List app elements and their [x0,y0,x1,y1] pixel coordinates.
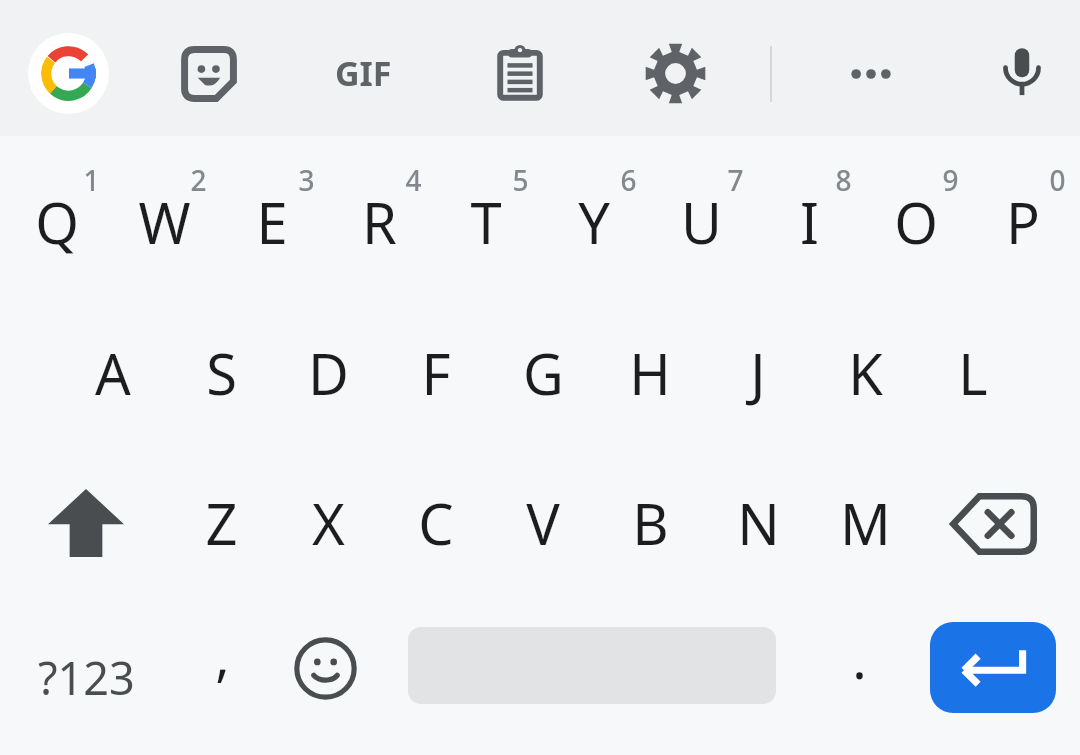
button[interactable] [170,600,280,755]
staticText: F [421,335,451,411]
staticText: Z [205,485,238,561]
button[interactable] [973,150,1080,300]
staticText: , [215,618,230,692]
button[interactable]: Shift [6,450,167,600]
button[interactable]: ?123 [6,600,166,755]
button[interactable] [865,150,972,300]
button[interactable] [60,300,167,450]
button[interactable] [275,450,382,600]
button[interactable] [650,150,757,300]
button[interactable]: Clipboard [487,40,553,106]
button[interactable]: Google search [28,33,109,114]
staticText: I [800,184,819,260]
button[interactable] [800,600,912,755]
button[interactable]: Settings [643,41,708,106]
button[interactable] [489,300,596,450]
staticText: T [470,184,502,260]
button[interactable] [328,150,435,300]
button[interactable] [436,150,543,300]
staticText: 5 [512,161,529,199]
staticText: 1 [83,161,100,199]
staticText: C [418,485,454,561]
staticText: X [312,485,345,561]
staticText: G [523,335,564,411]
button[interactable] [543,150,650,300]
button[interactable] [382,300,489,450]
button[interactable] [489,450,596,600]
button[interactable]: GIF [322,40,404,106]
staticText: 3 [298,161,315,199]
staticText: U [681,184,722,260]
button[interactable] [275,300,382,450]
staticText: 9 [942,161,959,199]
button[interactable]: Enter [930,622,1056,713]
button[interactable] [221,150,328,300]
staticText: 2 [190,161,207,199]
button[interactable] [758,150,865,300]
button[interactable] [597,450,704,600]
button[interactable]: Voice input [989,39,1055,105]
staticText: A [95,335,131,411]
staticText: 6 [620,161,637,199]
staticText: S [206,335,237,411]
staticText: P [1006,184,1040,260]
staticText: D [308,335,349,411]
staticText: M [840,485,891,561]
button[interactable] [167,300,274,450]
button[interactable] [704,300,811,450]
staticText: E [256,184,288,260]
button[interactable] [704,450,811,600]
button[interactable] [382,450,489,600]
button[interactable] [597,300,704,450]
staticText: N [737,485,780,561]
staticText: R [362,184,397,260]
staticText: B [632,485,669,561]
button[interactable] [113,150,220,300]
staticText: V [526,485,560,561]
button[interactable] [6,150,113,300]
staticText: GIF [335,50,392,96]
staticText: . [852,621,867,695]
staticText: Y [578,184,610,260]
staticText: 0 [1049,161,1066,199]
button[interactable]: Emoji [284,600,396,755]
staticText: W [138,184,191,260]
staticText: L [958,335,988,411]
button[interactable] [919,300,1026,450]
staticText: K [848,335,883,411]
staticText: H [629,335,671,411]
staticText: ?123 [38,647,135,708]
staticText: 4 [405,161,422,199]
staticText: O [894,184,938,260]
staticText: 7 [727,161,744,199]
staticText: 8 [835,161,852,199]
button[interactable]: Stickers [176,41,242,107]
button[interactable]: Stickers [176,41,242,107]
button[interactable] [812,300,919,450]
staticText: Q [35,184,79,260]
button[interactable] [812,450,919,600]
button[interactable]: Backspace [919,450,1080,600]
button[interactable] [167,450,274,600]
button[interactable]: More options [838,41,904,107]
staticText: J [750,335,766,411]
